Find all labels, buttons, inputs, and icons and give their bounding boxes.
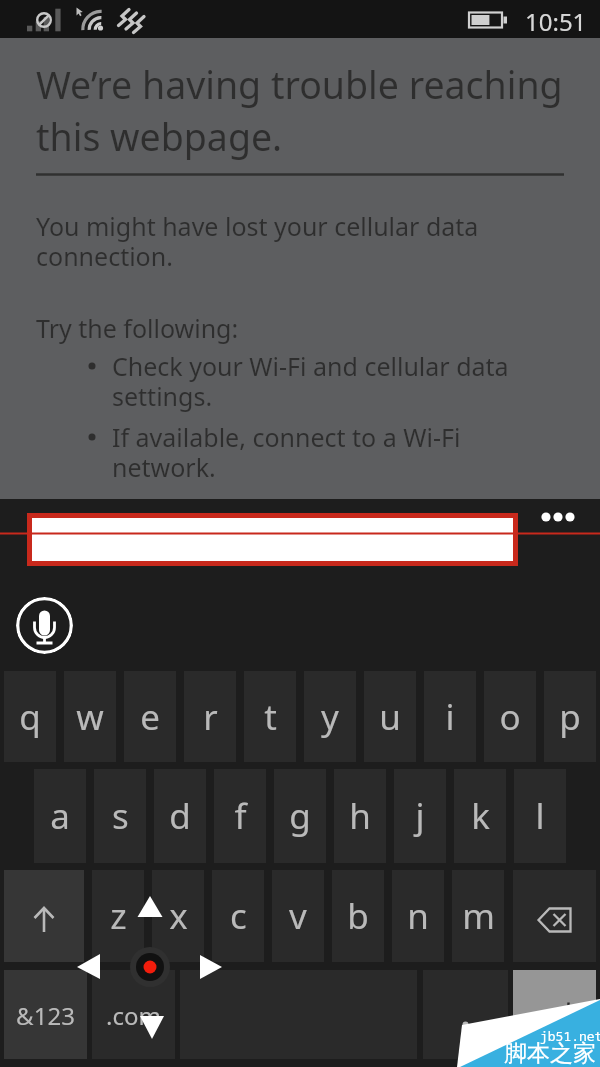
staticText: m [462,892,495,940]
button[interactable]: v [272,870,324,962]
staticText: o [499,693,521,741]
staticText: s [112,792,129,840]
button[interactable]: j [394,769,446,863]
staticText: i [445,693,455,741]
button[interactable]: Backspace [513,870,596,962]
staticText: e [140,693,160,741]
button[interactable]: x [152,870,204,962]
button[interactable]: d [154,769,206,863]
button[interactable]: q [4,671,56,762]
staticText: d [169,792,191,840]
button[interactable]: u [364,671,416,762]
button[interactable]: h [334,769,386,863]
button[interactable]: e [124,671,176,762]
button[interactable]: n [392,870,444,962]
button[interactable]: Enter [513,970,596,1059]
button[interactable]: Shift [4,870,84,962]
button[interactable]: l [514,769,566,863]
button[interactable]: Period [423,970,508,1059]
button[interactable]: s [94,769,146,863]
staticText: a [50,792,70,840]
staticText: g [289,792,311,840]
button[interactable]: z [92,870,144,962]
staticText: If available, connect to a Wi-Fi network… [112,420,492,485]
staticText: z [110,892,127,940]
staticText: .com [106,999,161,1032]
button[interactable]: Voice search [16,597,73,654]
staticText: j [415,792,425,840]
button[interactable]: .com [92,970,175,1059]
staticText: jb51.net [540,1027,600,1045]
staticText: h [349,792,371,840]
staticText: l [535,792,545,840]
staticText: w [76,693,104,741]
staticText: 10:51 [525,5,587,38]
button[interactable]: b [332,870,384,962]
button[interactable]: i [424,671,476,762]
button[interactable]: w [64,671,116,762]
button[interactable]: o [484,671,536,762]
button[interactable]: c [212,870,264,962]
button[interactable]: Address bar [32,518,513,561]
staticText: u [379,693,401,741]
staticText: You might have lost your cellular data c… [36,209,506,274]
staticText: &123 [16,999,75,1032]
button[interactable]: g [274,769,326,863]
staticText: Check your Wi-Fi and cellular data setti… [112,349,524,414]
staticText: b [347,892,369,940]
button[interactable]: f [214,769,266,863]
button[interactable]: m [452,870,504,962]
button[interactable]: y [304,671,356,762]
staticText: t [264,693,277,741]
button[interactable]: a [34,769,86,863]
staticText: f [234,792,247,840]
button[interactable]: r [184,671,236,762]
button[interactable]: More [534,497,582,537]
staticText: p [559,693,581,741]
staticText: We’re having trouble reaching this webpa… [36,59,572,162]
staticText: q [19,693,41,741]
staticText: 脚本之家 [504,1039,596,1067]
button[interactable]: &123 [4,970,87,1059]
staticText: k [471,792,490,840]
button[interactable]: k [454,769,506,863]
button[interactable]: p [544,671,596,762]
button[interactable]: Space [180,970,417,1059]
button[interactable]: t [244,671,296,762]
staticText: x [169,892,188,940]
staticText: y [321,693,339,741]
staticText: r [203,693,218,741]
staticText: c [230,892,247,940]
staticText: Try the following: [36,311,239,345]
staticText: v [289,892,307,940]
staticText: n [407,892,429,940]
